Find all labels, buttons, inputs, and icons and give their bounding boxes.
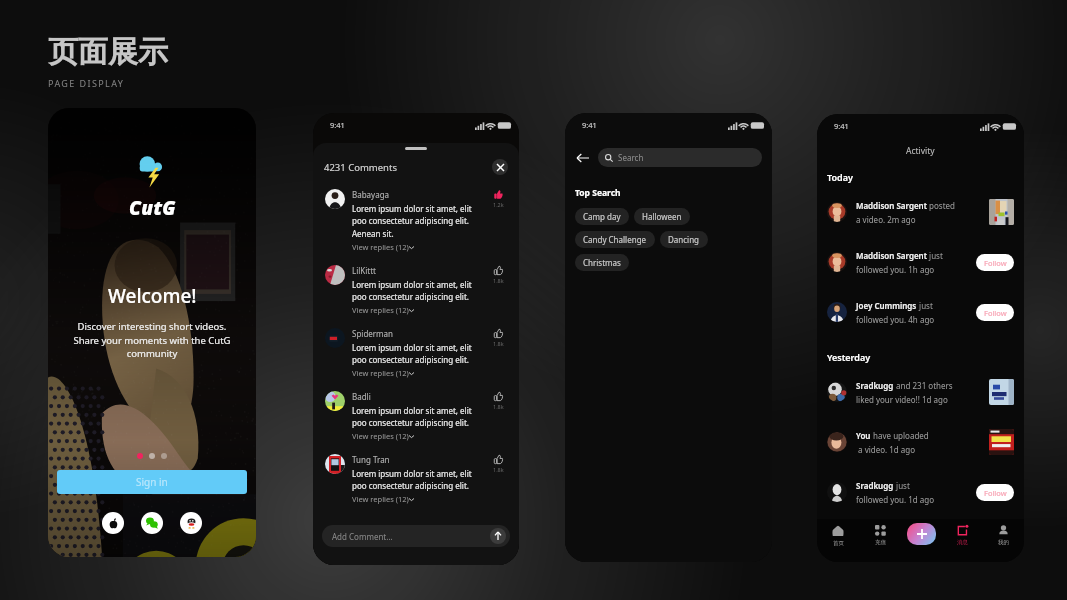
button[interactable]: 充值: [859, 519, 901, 562]
staticText: 1.2k: [493, 201, 504, 208]
staticText: PAGE DISPLAY: [48, 77, 125, 89]
staticText: Halloween: [642, 211, 682, 222]
staticText: Tung Tran: [352, 454, 390, 465]
staticText: Lorem ipsum dolor sit amet, elit poo con…: [352, 405, 472, 429]
staticText: Follow: [984, 488, 1007, 498]
staticText: Lorem ipsum dolor sit amet, elit poo con…: [352, 203, 472, 240]
staticText: Candy Challenge: [583, 234, 647, 245]
staticText: and 231 others: [894, 380, 953, 391]
staticText: View replies (12): [352, 368, 409, 378]
button[interactable]: Follow: [976, 254, 1014, 271]
button[interactable]: Add Comment...: [322, 525, 510, 547]
button[interactable]: Maddison Sargent: [817, 237, 1024, 287]
button[interactable]: Sradkugg: [817, 467, 1024, 517]
staticText: just: [927, 250, 943, 261]
staticText: Add Comment...: [332, 531, 393, 542]
button[interactable]: Maddison Sargent: [817, 187, 1024, 237]
button[interactable]: Babayaga: [313, 189, 519, 265]
staticText: Badli: [352, 391, 371, 402]
staticText: Babayaga: [352, 189, 390, 200]
staticText: 消息: [957, 539, 968, 546]
button[interactable]: LilKittt: [313, 265, 519, 328]
staticText: followed you. 1h ago: [856, 264, 935, 275]
staticText: Discover interesting short videos. Share…: [73, 320, 231, 359]
staticText: Lorem ipsum dolor sit amet, elit poo con…: [352, 342, 472, 366]
staticText: Sradkugg: [856, 480, 894, 491]
button[interactable]: Sign in: [57, 470, 247, 494]
button[interactable]: Camp day: [575, 208, 629, 225]
staticText: 充值: [875, 539, 886, 546]
staticText: View replies (12): [352, 305, 409, 315]
staticText: Follow: [984, 308, 1007, 318]
staticText: Christmas: [583, 257, 621, 268]
button[interactable]: Follow: [976, 484, 1014, 501]
button[interactable]: Sign in with QQ: [180, 512, 202, 534]
staticText: 1.8k: [493, 466, 504, 473]
staticText: View replies (12): [352, 431, 409, 441]
button[interactable]: Sign in with Apple: [102, 512, 124, 534]
staticText: 4231 Comments: [324, 161, 397, 174]
button[interactable]: Follow: [976, 304, 1014, 321]
staticText: 1.8k: [493, 340, 504, 347]
staticText: 9:41: [834, 121, 849, 131]
staticText: 9:41: [582, 120, 597, 130]
staticText: Sradkugg: [856, 380, 894, 391]
button[interactable]: Christmas: [575, 254, 629, 271]
button[interactable]: Badli: [313, 391, 519, 454]
staticText: Lorem ipsum dolor sit amet, elit poo con…: [352, 468, 472, 492]
staticText: View replies (12): [352, 242, 409, 252]
button[interactable]: Candy Challenge: [575, 231, 655, 248]
staticText: 页面展示: [48, 33, 168, 71]
button[interactable]: Create: [907, 523, 936, 545]
staticText: 1.8k: [493, 403, 504, 410]
button[interactable]: Sradkugg: [817, 367, 1024, 417]
button[interactable]: 首页: [817, 519, 859, 562]
button[interactable]: Halloween: [634, 208, 690, 225]
staticText: 首页: [833, 540, 844, 547]
staticText: liked your video!! 1d ago: [856, 394, 948, 405]
staticText: Spiderman: [352, 328, 394, 339]
staticText: 我的: [998, 539, 1009, 546]
button[interactable]: Joey Cummings: [817, 287, 1024, 337]
staticText: Welcome!: [108, 283, 197, 309]
staticText: a video. 2m ago: [856, 214, 916, 225]
staticText: Maddison Sargent: [856, 250, 927, 261]
button[interactable]: 我的: [983, 519, 1024, 562]
button[interactable]: Search: [598, 148, 762, 167]
staticText: have uploaded: [871, 430, 929, 441]
button[interactable]: Spiderman: [313, 328, 519, 391]
staticText: 9:41: [330, 120, 345, 130]
staticText: Activity: [906, 145, 935, 157]
staticText: Follow: [984, 258, 1007, 268]
staticText: Top Search: [575, 187, 621, 199]
staticText: Maddison Sargent: [856, 200, 927, 211]
staticText: You: [856, 430, 871, 441]
button[interactable]: Sign in with WeChat: [141, 512, 163, 534]
staticText: Lorem ipsum dolor sit amet, elit poo con…: [352, 279, 472, 303]
staticText: Today: [827, 171, 853, 183]
button[interactable]: Back: [574, 149, 592, 167]
staticText: View replies (12): [352, 494, 409, 504]
staticText: just: [917, 300, 933, 311]
button[interactable]: Tung Tran: [313, 454, 519, 517]
staticText: LilKittt: [352, 265, 376, 276]
button[interactable]: You: [817, 417, 1024, 467]
staticText: Yesterday: [827, 351, 871, 363]
staticText: 1.8k: [493, 277, 504, 284]
staticText: followed you. 4h ago: [856, 314, 935, 325]
other: Send: [490, 528, 506, 544]
staticText: followed you. 1d ago: [856, 494, 935, 505]
staticText: Joey Cummings: [856, 300, 917, 311]
staticText: Search: [618, 152, 644, 163]
button[interactable]: 消息: [942, 519, 983, 562]
button[interactable]: Dancing: [660, 231, 708, 248]
staticText: posted: [927, 200, 955, 211]
staticText: just: [894, 480, 910, 491]
staticText: CutG: [129, 195, 176, 221]
staticText: Sign in: [136, 475, 168, 489]
staticText: Dancing: [668, 234, 700, 245]
button[interactable]: Close comments: [492, 159, 508, 175]
staticText: a video. 1d ago: [856, 444, 916, 455]
staticText: Camp day: [583, 211, 621, 222]
